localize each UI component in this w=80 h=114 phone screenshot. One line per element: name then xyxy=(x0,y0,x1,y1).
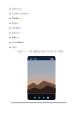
button[interactable]: Library xyxy=(38,97,40,98)
staticText: Quick start xyxy=(12,32,21,34)
button[interactable]: Quick start xyxy=(9,30,49,35)
staticText: Analytics tab xyxy=(12,8,22,10)
staticText: Offline library xyxy=(12,17,22,19)
button[interactable]: Offline library xyxy=(9,16,49,21)
staticText: Home widgets xyxy=(12,27,22,29)
staticText: Push alerts on devices xyxy=(12,13,29,15)
button[interactable]: Analytics tab xyxy=(9,6,49,11)
button[interactable]: Home xyxy=(34,97,36,98)
staticText: Accessible labels xyxy=(12,41,24,43)
button[interactable]: Profile xyxy=(47,97,49,98)
button[interactable]: Accessible labels xyxy=(9,40,49,45)
button[interactable]: Widgets xyxy=(9,21,49,26)
button[interactable]: Home widgets xyxy=(9,26,49,30)
staticText: Widgets xyxy=(12,22,19,24)
button[interactable]: Push alerts on devices xyxy=(9,11,49,16)
button[interactable]: Bug fix xyxy=(9,45,49,50)
staticText: Bug fix xyxy=(12,46,17,48)
staticText: Figure 1 — the updated home screen on iP… xyxy=(17,50,63,53)
staticText: New library xyxy=(12,37,20,39)
button[interactable]: New library xyxy=(9,35,49,40)
